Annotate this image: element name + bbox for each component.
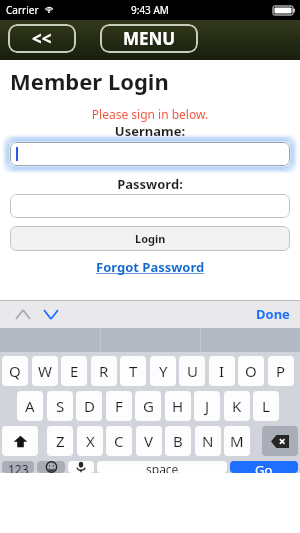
staticText: Forgot Password [96, 258, 205, 276]
button[interactable]: F [106, 391, 132, 421]
staticText: F [115, 396, 123, 416]
staticText: U [187, 361, 198, 381]
button[interactable]: M [224, 426, 250, 456]
staticText: Login [135, 231, 166, 246]
button[interactable]: D [76, 391, 102, 421]
staticText: X [86, 431, 95, 451]
button[interactable]: O [238, 356, 264, 386]
staticText: N [202, 431, 214, 451]
button[interactable]: A [17, 391, 43, 421]
staticText: Member Login [10, 66, 169, 96]
staticText: I [219, 361, 225, 381]
staticText: 123 [8, 461, 29, 473]
staticText: Carrier [6, 3, 39, 17]
staticText: Z [56, 431, 65, 451]
staticText: R [99, 361, 109, 381]
button[interactable] [10, 194, 290, 218]
button[interactable]: V [136, 426, 162, 456]
staticText: space [146, 461, 179, 473]
staticText: K [232, 396, 242, 416]
button[interactable]: Back [8, 24, 76, 53]
button[interactable]: H [165, 391, 191, 421]
staticText: W [38, 361, 52, 381]
button[interactable]: Go [230, 461, 298, 473]
button[interactable]: C [106, 426, 132, 456]
staticText: H [172, 396, 184, 416]
staticText: Password: [0, 175, 300, 193]
button[interactable]: Dictation [68, 461, 94, 473]
staticText: D [84, 396, 95, 416]
button[interactable]: Previous field [12, 303, 34, 325]
button[interactable]: Y [150, 356, 176, 386]
button[interactable]: L [253, 391, 279, 421]
staticText: O [245, 361, 257, 381]
button[interactable]: U [179, 356, 205, 386]
button[interactable]: Emoji [37, 461, 65, 473]
button[interactable]: J [194, 391, 220, 421]
button[interactable]: P [268, 356, 294, 386]
button[interactable]: I [209, 356, 235, 386]
button[interactable]: Login [10, 226, 290, 251]
button[interactable]: Done [256, 305, 290, 323]
button[interactable]: MENU [100, 24, 198, 53]
button[interactable]: Backspace [262, 426, 298, 456]
staticText: J [205, 396, 210, 416]
staticText: P [276, 361, 286, 381]
staticText: MENU [123, 27, 176, 50]
staticText: << [32, 27, 52, 50]
staticText: Please sign in below. [0, 106, 300, 122]
button[interactable]: B [165, 426, 191, 456]
staticText: C [114, 431, 124, 451]
staticText: T [129, 361, 138, 381]
staticText: Go [255, 461, 273, 473]
staticText: B [173, 431, 183, 451]
staticText: Q [9, 361, 21, 381]
button[interactable]: T [120, 356, 146, 386]
button[interactable]: Q [2, 356, 28, 386]
staticText: G [143, 396, 154, 416]
button[interactable]: S [47, 391, 73, 421]
button[interactable]: X [77, 426, 103, 456]
staticText: S [56, 396, 65, 416]
button[interactable]: 123 [2, 461, 34, 473]
staticText: 9:43 AM [131, 3, 169, 17]
button[interactable]: R [91, 356, 117, 386]
button[interactable]: K [224, 391, 250, 421]
button[interactable] [10, 142, 290, 166]
staticText: L [262, 396, 270, 416]
button[interactable]: Z [47, 426, 73, 456]
staticText: Y [159, 361, 168, 381]
staticText: Done [256, 305, 290, 323]
staticText: M [230, 431, 244, 451]
staticText: V [144, 431, 154, 451]
staticText: E [70, 361, 79, 381]
button[interactable]: Shift [2, 426, 38, 456]
button[interactable]: Next field [40, 303, 62, 325]
button[interactable]: space [97, 461, 227, 473]
button[interactable]: N [195, 426, 221, 456]
staticText: Username: [0, 122, 300, 140]
button[interactable]: W [32, 356, 58, 386]
button[interactable]: G [135, 391, 161, 421]
button[interactable]: E [61, 356, 87, 386]
staticText: A [25, 396, 35, 416]
button[interactable]: Forgot Password [0, 258, 300, 276]
